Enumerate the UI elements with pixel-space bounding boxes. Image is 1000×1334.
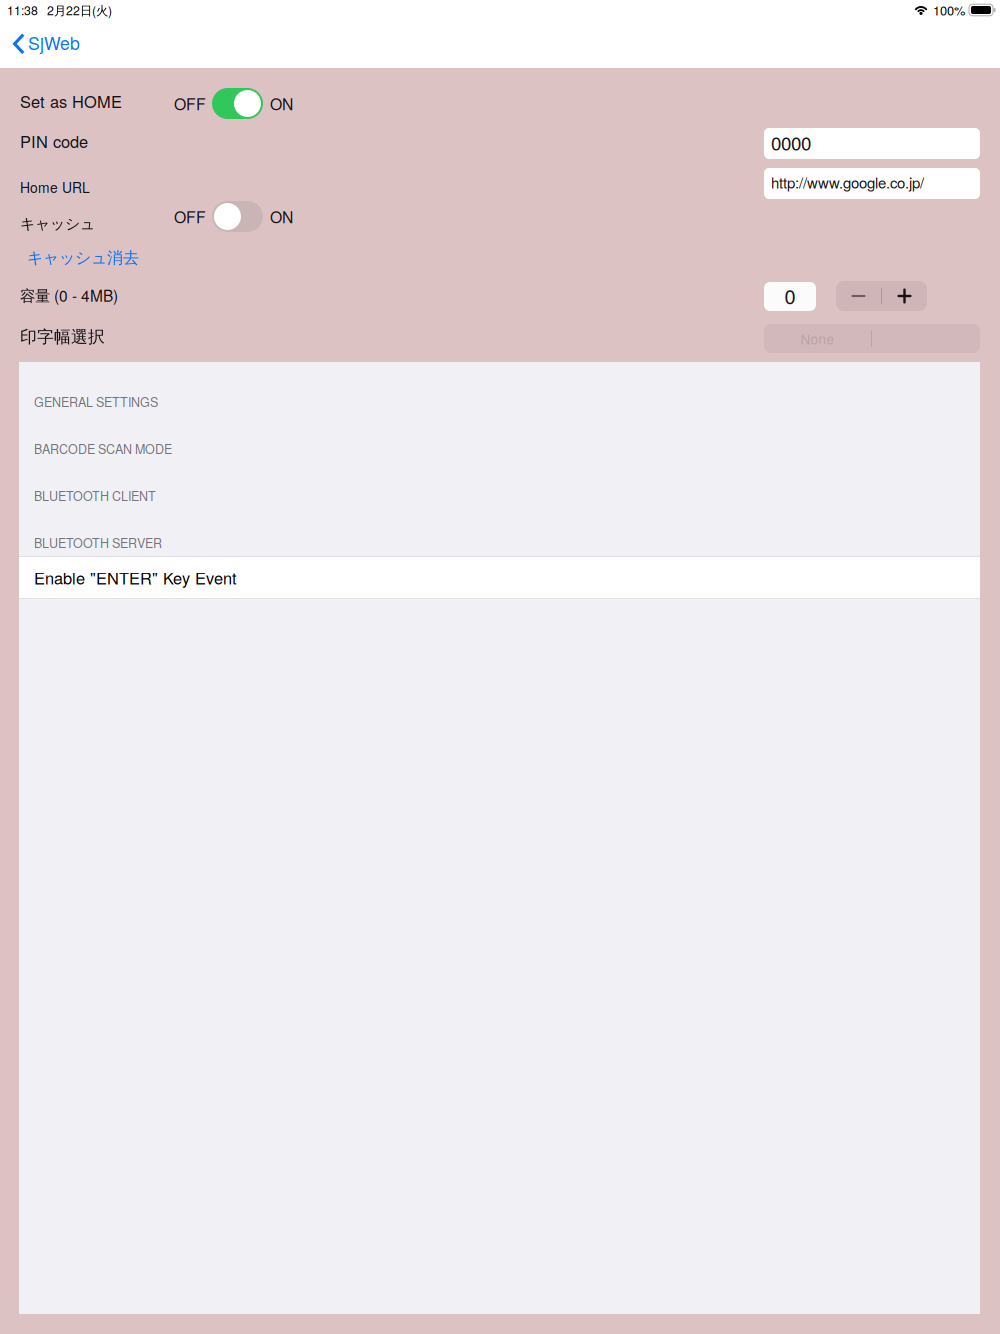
- button[interactable]: Set as HOME: [212, 88, 263, 119]
- staticText: BLUETOOTH CLIENT: [34, 486, 156, 504]
- button[interactable]: http://www.google.co.jp/: [764, 168, 980, 199]
- button[interactable]: Enable "ENTER" Key Event: [19, 556, 980, 599]
- button[interactable]: キャッシュ消去: [27, 247, 327, 269]
- staticText: キャッシュ消去: [27, 248, 139, 268]
- button[interactable]: None: [764, 324, 980, 353]
- staticText: BLUETOOTH SERVER: [34, 533, 162, 551]
- staticText: キャッシュ: [20, 215, 95, 233]
- staticText: BARCODE SCAN MODE: [34, 439, 172, 457]
- button[interactable]: BLUETOOTH SERVER: [19, 519, 980, 566]
- button[interactable]: BARCODE SCAN MODE: [19, 425, 980, 472]
- staticText: Enable "ENTER" Key Event: [34, 566, 237, 589]
- button[interactable]: 0000: [764, 128, 980, 159]
- staticText: 印字幅選択: [20, 326, 105, 348]
- staticText: OFF: [174, 92, 206, 115]
- button[interactable]: Cache: [212, 201, 263, 232]
- staticText: 11:38 2月22日(火): [7, 1, 112, 19]
- button[interactable]: BLUETOOTH CLIENT: [19, 472, 980, 519]
- staticText: None: [800, 329, 834, 348]
- staticText: Set as HOME: [20, 89, 122, 113]
- button[interactable]: SjWeb: [0, 20, 94, 68]
- staticText: 100%: [933, 1, 965, 19]
- staticText: OFF: [174, 205, 206, 228]
- staticText: GENERAL SETTINGS: [34, 392, 158, 410]
- staticText: Home URL: [20, 177, 90, 197]
- staticText: 容量 (0 - 4MB): [20, 284, 118, 306]
- button[interactable]: Decrease: [836, 281, 881, 311]
- staticText: 0: [784, 281, 795, 310]
- button[interactable]: GENERAL SETTINGS: [19, 378, 980, 425]
- staticText: 0000: [771, 129, 811, 156]
- staticText: ON: [270, 205, 293, 228]
- staticText: SjWeb: [28, 30, 80, 55]
- staticText: PIN code: [20, 129, 88, 153]
- staticText: ON: [270, 92, 293, 115]
- staticText: http://www.google.co.jp/: [771, 171, 924, 193]
- button[interactable]: Increase: [882, 281, 927, 311]
